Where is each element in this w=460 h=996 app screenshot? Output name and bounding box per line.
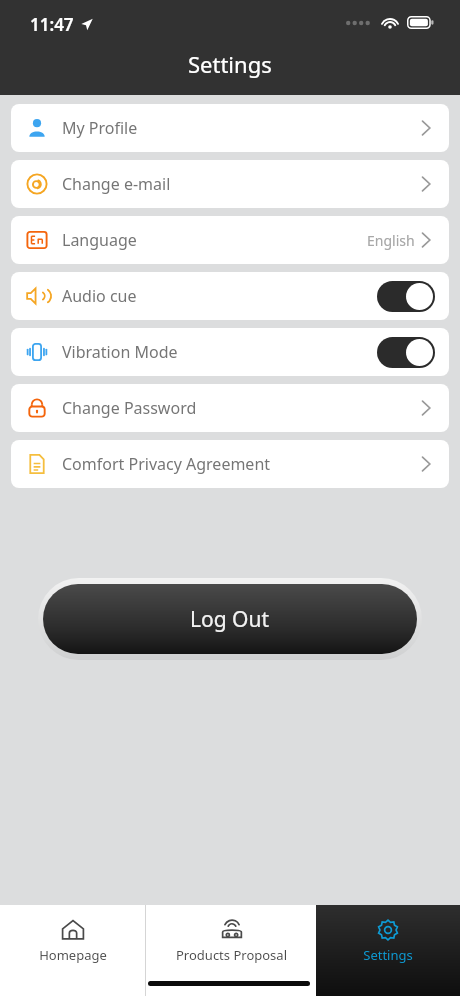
staticText: Language bbox=[62, 229, 137, 251]
staticText: Products Proposal bbox=[176, 946, 287, 964]
staticText: 11:47 bbox=[30, 13, 74, 36]
button[interactable]: Products Proposal bbox=[146, 905, 316, 996]
button[interactable]: My Profile bbox=[11, 104, 449, 152]
button[interactable]: Log Out bbox=[43, 584, 417, 654]
button[interactable]: Vibration Mode toggle bbox=[377, 337, 435, 368]
staticText: Settings bbox=[188, 49, 272, 79]
staticText: Vibration Mode bbox=[62, 341, 178, 363]
button[interactable]: Language bbox=[11, 216, 449, 264]
staticText: Change e-mail bbox=[62, 173, 171, 195]
staticText: My Profile bbox=[62, 117, 138, 139]
staticText: Log Out bbox=[190, 605, 270, 634]
button[interactable]: Change e-mail bbox=[11, 160, 449, 208]
button[interactable]: Vibration Mode bbox=[11, 328, 449, 376]
button[interactable]: Change Password bbox=[11, 384, 449, 432]
button[interactable]: Audio cue toggle bbox=[377, 281, 435, 312]
staticText: Settings bbox=[363, 946, 413, 964]
staticText: Audio cue bbox=[62, 285, 137, 307]
button[interactable]: Audio cue bbox=[11, 272, 449, 320]
button[interactable]: Comfort Privacy Agreement bbox=[11, 440, 449, 488]
button[interactable]: Homepage bbox=[0, 905, 145, 996]
staticText: Change Password bbox=[62, 397, 197, 419]
staticText: English bbox=[367, 231, 415, 250]
staticText: Comfort Privacy Agreement bbox=[62, 453, 271, 475]
staticText: Homepage bbox=[39, 946, 107, 964]
button[interactable]: Settings bbox=[316, 905, 460, 996]
